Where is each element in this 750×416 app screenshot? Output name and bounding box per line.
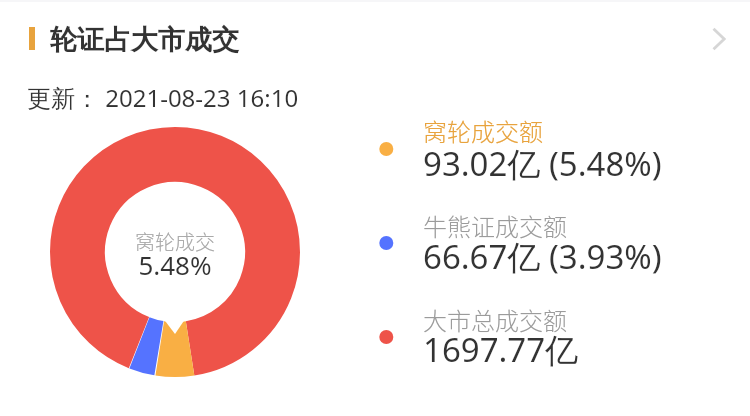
button[interactable]: 轮证占大市成交: [0, 0, 750, 80]
staticText: 93.02亿 (5.48%): [423, 141, 662, 186]
staticText: 1697.77亿: [423, 327, 579, 372]
button[interactable]: 大市总成交额: [370, 300, 710, 392]
staticText: 窝轮成交额: [423, 113, 543, 148]
staticText: 66.67亿 (3.93%): [423, 234, 662, 279]
button[interactable]: 窝轮成交额: [370, 112, 710, 204]
button[interactable]: Open details: [693, 14, 745, 66]
button[interactable]: 牛熊证成交额: [370, 206, 710, 298]
staticText: 轮证占大市成交: [50, 23, 239, 57]
staticText: 更新： 2021-08-23 16:10: [27, 81, 299, 114]
staticText: 5.48%: [138, 247, 212, 282]
staticText: 大市总成交额: [423, 302, 567, 337]
staticText: 窝轮成交: [135, 227, 215, 256]
staticText: 牛熊证成交额: [423, 208, 567, 243]
